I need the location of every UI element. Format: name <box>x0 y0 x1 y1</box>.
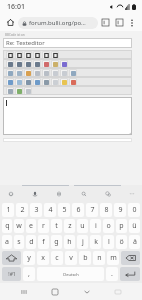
button[interactable]: 9 <box>114 203 126 217</box>
button[interactable]: 8 <box>100 203 112 217</box>
button[interactable]: Editor tool <box>42 51 50 59</box>
button[interactable]: Hide keyboard <box>79 284 95 300</box>
button[interactable]: More options <box>125 16 138 29</box>
button[interactable]: Editor tool <box>24 60 32 68</box>
button[interactable]: t <box>51 219 62 233</box>
button[interactable]: h <box>64 235 75 249</box>
button[interactable]: f <box>38 235 49 249</box>
button[interactable]: Editor tool <box>6 87 14 95</box>
button[interactable]: p <box>116 219 127 233</box>
button[interactable]: forum.bulli.org/po… <box>18 17 98 29</box>
button[interactable]: i <box>90 219 101 233</box>
button[interactable]: Editor tool <box>24 51 32 59</box>
button[interactable]: o <box>103 219 114 233</box>
button[interactable]: 0 <box>128 203 140 217</box>
button[interactable]: Editor tool <box>6 78 14 86</box>
button[interactable]: Editor tool <box>24 78 32 86</box>
button[interactable]: 6 <box>72 203 84 217</box>
button[interactable]: Editor tool <box>60 60 68 68</box>
button[interactable]: Editor tool <box>69 69 77 77</box>
button[interactable]: Editor tool <box>6 69 14 77</box>
button[interactable]: Re: Texteditor <box>3 38 132 48</box>
button[interactable]: u <box>77 219 88 233</box>
button[interactable]: m <box>107 251 119 265</box>
button[interactable]: Editor tool <box>42 69 50 77</box>
button[interactable]: Editor tool <box>24 87 32 95</box>
button[interactable]: g <box>51 235 62 249</box>
button[interactable]: . <box>106 267 118 281</box>
button[interactable]: Emoji <box>4 187 17 200</box>
button[interactable]: Reader mode <box>100 17 111 28</box>
button[interactable]: q <box>2 219 12 233</box>
button[interactable]: n <box>93 251 105 265</box>
button[interactable]: Editor tool <box>42 78 50 86</box>
staticText: m <box>110 253 117 263</box>
button[interactable]: Editor tool <box>33 69 41 77</box>
button[interactable]: 3 <box>30 203 42 217</box>
button[interactable]: 1 <box>2 203 14 217</box>
button[interactable]: !#1 <box>2 267 21 281</box>
button[interactable]: Editor tool <box>6 60 14 68</box>
button[interactable]: Editor tool <box>15 69 23 77</box>
button[interactable]: r <box>38 219 49 233</box>
button[interactable]: Search <box>77 187 90 200</box>
button[interactable]: Editor tool <box>60 78 68 86</box>
button[interactable]: Editor tool <box>51 51 59 59</box>
button[interactable]: s <box>14 235 24 249</box>
button[interactable]: Translate <box>101 187 114 200</box>
button[interactable]: j <box>77 235 88 249</box>
button[interactable]: ö <box>116 235 127 249</box>
button[interactable]: c <box>51 251 63 265</box>
button[interactable]: Editor tool <box>33 60 41 68</box>
button[interactable]: k <box>90 235 101 249</box>
button[interactable]: Shift <box>2 251 21 265</box>
button[interactable]: Editor tool <box>51 69 59 77</box>
button[interactable]: 7 <box>86 203 98 217</box>
button[interactable]: ä <box>129 235 140 249</box>
button[interactable]: Deutsch <box>37 267 104 281</box>
staticText: x <box>41 253 45 263</box>
button[interactable]: Editor tool <box>33 78 41 86</box>
button[interactable]: Editor tool <box>15 87 23 95</box>
button[interactable]: Downloads <box>114 17 125 28</box>
button[interactable]: Editor tool <box>51 78 59 86</box>
staticText: h <box>67 237 72 247</box>
button[interactable]: z <box>64 219 75 233</box>
button[interactable]: x <box>37 251 49 265</box>
button[interactable]: , <box>23 267 35 281</box>
button[interactable]: 4 <box>44 203 56 217</box>
button[interactable]: 2 <box>16 203 28 217</box>
button[interactable]: Editor tool <box>69 78 77 86</box>
button[interactable]: Keyboard switcher <box>110 284 126 300</box>
button[interactable]: y <box>23 251 35 265</box>
button[interactable]: Recents <box>16 284 32 300</box>
button[interactable]: Editor tool <box>15 51 23 59</box>
button[interactable]: Editor tool <box>60 69 68 77</box>
staticText: BBCode ist an <box>5 33 25 37</box>
button[interactable]: Home <box>47 284 63 300</box>
button[interactable]: Editor tool <box>33 51 41 59</box>
staticText: r <box>42 221 45 231</box>
button[interactable]: l <box>103 235 114 249</box>
button[interactable]: a <box>2 235 12 249</box>
button[interactable]: b <box>79 251 91 265</box>
button[interactable]: 5 <box>58 203 70 217</box>
button[interactable]: Editor tool <box>6 51 14 59</box>
button[interactable]: Voice input <box>28 187 41 200</box>
button[interactable]: Enter <box>120 267 140 281</box>
button[interactable]: e <box>26 219 36 233</box>
button[interactable]: Backspace <box>121 251 140 265</box>
button[interactable]: Editor tool <box>42 60 50 68</box>
button[interactable]: d <box>26 235 36 249</box>
button[interactable]: Home <box>4 16 17 29</box>
button[interactable]: Editor tool <box>15 78 23 86</box>
button[interactable]: Editor tool <box>51 60 59 68</box>
button[interactable]: Stickers <box>52 187 65 200</box>
button[interactable]: More <box>125 187 138 200</box>
button[interactable]: v <box>65 251 77 265</box>
button[interactable]: w <box>14 219 24 233</box>
button[interactable]: Editor tool <box>24 69 32 77</box>
button[interactable]: Editor tool <box>15 60 23 68</box>
button[interactable]: ü <box>129 219 140 233</box>
button[interactable] <box>3 97 132 135</box>
